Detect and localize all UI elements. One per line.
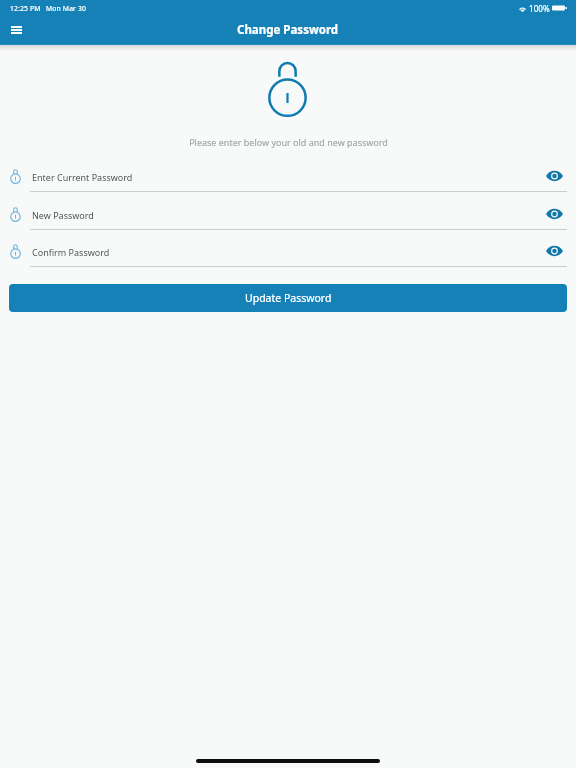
button[interactable]: Show password	[542, 239, 566, 263]
staticText: Confirm Password	[32, 246, 110, 258]
staticText: Change Password	[237, 22, 339, 38]
staticText: New Password	[32, 209, 94, 221]
staticText: Enter Current Password	[32, 171, 133, 183]
staticText: 100%	[529, 3, 550, 14]
staticText: Update Password	[245, 291, 332, 305]
button[interactable]: Show password	[542, 164, 566, 188]
button[interactable]: Update Password	[9, 284, 567, 312]
staticText: 12:25 PM	[10, 4, 41, 13]
button[interactable]: Open navigation menu	[5, 19, 27, 41]
button[interactable]: New Password	[0, 201, 576, 229]
button[interactable]: Enter Current Password	[0, 163, 576, 191]
button[interactable]: Confirm Password	[0, 238, 576, 266]
button[interactable]: Show password	[542, 202, 566, 226]
staticText: Please enter below your old and new pass…	[189, 136, 388, 148]
staticText: Mon Mar 30	[46, 4, 87, 13]
